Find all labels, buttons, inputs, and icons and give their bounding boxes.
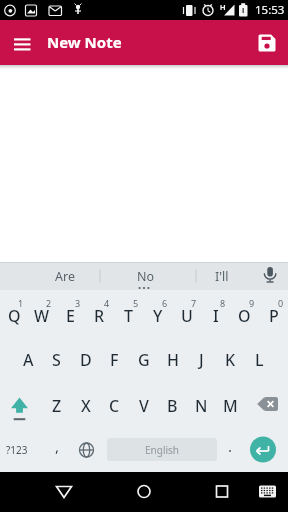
button[interactable]: English xyxy=(107,438,217,461)
button[interactable] xyxy=(0,382,42,428)
button[interactable] xyxy=(244,428,288,472)
staticText: X xyxy=(81,395,91,417)
button[interactable] xyxy=(253,29,281,57)
button[interactable]: K xyxy=(216,336,245,382)
staticText: M xyxy=(223,395,238,417)
button[interactable]: G xyxy=(129,336,158,382)
staticText: I xyxy=(213,305,219,327)
button[interactable]: R xyxy=(85,290,114,336)
button[interactable]: P xyxy=(259,290,288,336)
button[interactable]: C xyxy=(100,382,129,428)
button[interactable]: I xyxy=(201,290,230,336)
staticText: Z xyxy=(52,395,62,417)
button[interactable]: . xyxy=(216,428,245,472)
button[interactable] xyxy=(128,472,160,512)
staticText: T xyxy=(124,305,133,327)
staticText: K xyxy=(225,349,236,371)
staticText: R xyxy=(94,305,105,327)
staticText: No xyxy=(137,268,155,285)
staticText: D xyxy=(80,349,92,371)
button[interactable]: U xyxy=(172,290,201,336)
button[interactable]: D xyxy=(71,336,100,382)
staticText: Are xyxy=(55,268,75,285)
staticText: E xyxy=(66,305,75,327)
button[interactable] xyxy=(252,262,288,290)
staticText: Y xyxy=(153,305,163,327)
button[interactable]: W xyxy=(28,290,56,336)
staticText: S xyxy=(52,349,61,371)
staticText: U xyxy=(181,305,193,327)
button[interactable]: I'll xyxy=(200,262,244,290)
staticText: G xyxy=(138,349,150,371)
button[interactable]: V xyxy=(129,382,158,428)
button[interactable]: Q xyxy=(0,290,28,336)
button[interactable]: B xyxy=(158,382,187,428)
button[interactable]: N xyxy=(187,382,216,428)
button[interactable]: No xyxy=(110,262,182,290)
button[interactable]: J xyxy=(187,336,216,382)
staticText: 6 xyxy=(162,297,168,309)
button[interactable]: L xyxy=(245,336,274,382)
staticText: New Note xyxy=(47,32,122,52)
staticText: C xyxy=(109,395,120,417)
button[interactable]: H xyxy=(158,336,187,382)
staticText: 0 xyxy=(278,297,284,309)
staticText: B xyxy=(167,395,178,417)
button[interactable]: M xyxy=(216,382,245,428)
staticText: ?123 xyxy=(6,443,28,457)
button[interactable]: S xyxy=(42,336,71,382)
staticText: V xyxy=(139,395,149,417)
button[interactable]: E xyxy=(56,290,85,336)
button[interactable]: ?123 xyxy=(0,428,40,472)
button[interactable] xyxy=(206,472,238,512)
staticText: Q xyxy=(8,305,21,327)
button[interactable] xyxy=(252,472,284,512)
staticText: I'll xyxy=(215,268,229,285)
staticText: English xyxy=(145,443,180,457)
button[interactable] xyxy=(245,382,288,428)
staticText: 1 xyxy=(18,297,24,309)
button[interactable] xyxy=(48,472,80,512)
button[interactable]: , xyxy=(43,428,72,472)
button[interactable]: Are xyxy=(40,262,90,290)
button[interactable]: X xyxy=(71,382,100,428)
button[interactable]: A xyxy=(14,336,42,382)
staticText: 7 xyxy=(191,297,197,309)
staticText: 3 xyxy=(75,297,81,309)
staticText: L xyxy=(255,349,264,371)
staticText: 4 xyxy=(104,297,110,309)
staticText: A xyxy=(23,349,34,371)
staticText: F xyxy=(110,349,119,371)
button[interactable]: T xyxy=(114,290,143,336)
staticText: P xyxy=(269,305,279,327)
staticText: 5 xyxy=(133,297,139,309)
button[interactable]: F xyxy=(100,336,129,382)
button[interactable]: Y xyxy=(143,290,172,336)
button[interactable]: O xyxy=(230,290,259,336)
staticText: 9 xyxy=(249,297,255,309)
staticText: . xyxy=(228,436,233,456)
staticText: 8 xyxy=(220,297,226,309)
button[interactable]: Z xyxy=(42,382,71,428)
staticText: H xyxy=(167,349,179,371)
staticText: O xyxy=(238,305,251,327)
staticText: N xyxy=(195,395,208,417)
staticText: 2 xyxy=(46,297,52,309)
staticText: W xyxy=(34,305,50,327)
staticText: J xyxy=(199,349,204,371)
staticText: , xyxy=(55,436,60,456)
button[interactable] xyxy=(72,428,101,472)
button[interactable] xyxy=(8,29,36,57)
staticText: 15:53 xyxy=(255,2,285,18)
